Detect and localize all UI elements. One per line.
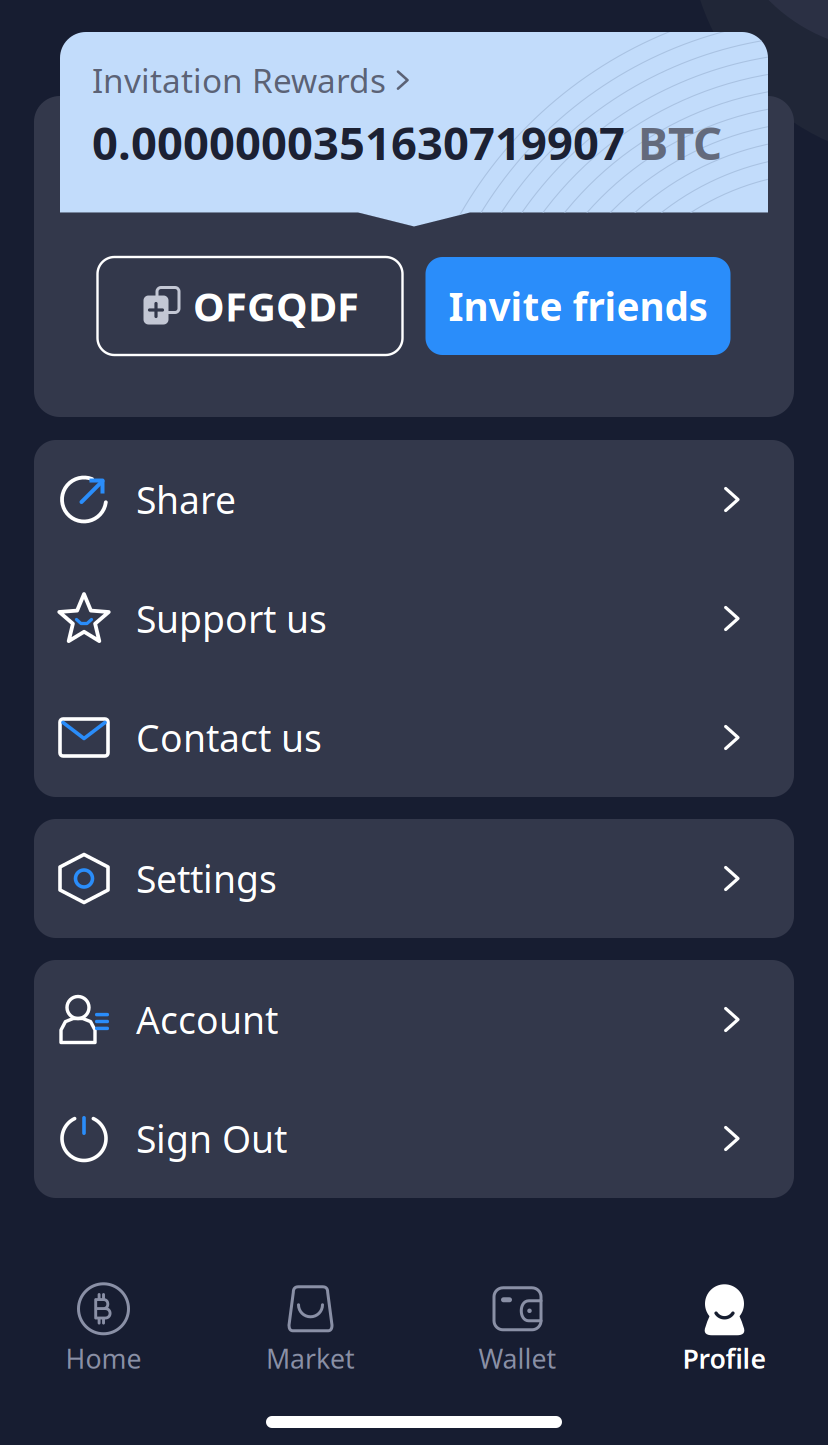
staticText: Account (136, 995, 278, 1044)
staticText: Market (266, 1341, 355, 1376)
staticText: Invitation Rewards (92, 58, 386, 102)
staticText: Wallet (478, 1341, 556, 1376)
staticText: Support us (136, 594, 327, 643)
staticText: Invite friends (448, 280, 707, 332)
staticText: 0.0000000351630719907 (92, 112, 625, 172)
button[interactable]: Profile (621, 1281, 828, 1377)
button[interactable]: Invite friends (425, 257, 730, 355)
staticText: Settings (136, 854, 277, 903)
button[interactable]: Share (34, 440, 794, 559)
button[interactable]: Market (207, 1281, 414, 1377)
button[interactable]: Sign Out (34, 1079, 794, 1198)
button[interactable]: Invitation Rewards (60, 32, 768, 226)
button[interactable]: Home (0, 1281, 207, 1377)
staticText: Sign Out (136, 1114, 287, 1163)
staticText: Share (136, 475, 236, 524)
staticText: OFGQDF (193, 279, 359, 332)
button[interactable]: Account (34, 960, 794, 1079)
button[interactable]: Wallet (414, 1281, 621, 1377)
staticText: Contact us (136, 713, 322, 762)
button[interactable]: Settings (34, 819, 794, 938)
staticText: Profile (682, 1341, 766, 1376)
button[interactable]: OFGQDF (97, 257, 402, 355)
staticText: BTC (638, 112, 722, 172)
button[interactable]: Contact us (34, 678, 794, 797)
staticText: Home (65, 1341, 141, 1376)
button[interactable]: Support us (34, 559, 794, 678)
